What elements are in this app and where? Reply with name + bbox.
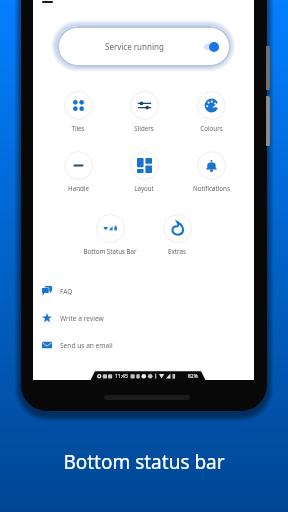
button[interactable]: Bottom Status Bar [78,214,142,255]
button[interactable]: Notifications [179,151,243,192]
button[interactable]: Extras [145,214,209,255]
staticText: 82% [188,373,198,380]
staticText: 11:45 [115,373,128,380]
staticText: Bottom status bar [63,449,225,475]
staticText: Colours [200,124,223,132]
button[interactable]: Service running [57,26,231,67]
staticText: FAQ [60,287,73,296]
staticText: Notifications [193,184,230,192]
button[interactable]: Sliders [112,91,176,132]
button[interactable]: Colours [179,91,243,132]
button[interactable]: Tiles [46,91,110,132]
staticText: Sliders [134,124,154,132]
other: Bottom status bar preview [90,370,206,381]
staticText: Handle [68,184,89,192]
staticText: Send us an email [60,341,113,350]
button[interactable]: Write a review [33,305,254,331]
staticText: Tiles [71,124,85,132]
staticText: Service running [105,41,164,52]
button[interactable]: Layout [112,151,176,192]
button[interactable]: FAQ [33,278,254,304]
staticText: Bottom Status Bar [83,247,137,255]
button[interactable]: Handle [46,151,110,192]
button[interactable]: Send us an email [33,332,254,358]
staticText: Write a review [60,314,104,323]
staticText: Layout [134,184,154,192]
staticText: Extras [168,247,186,255]
